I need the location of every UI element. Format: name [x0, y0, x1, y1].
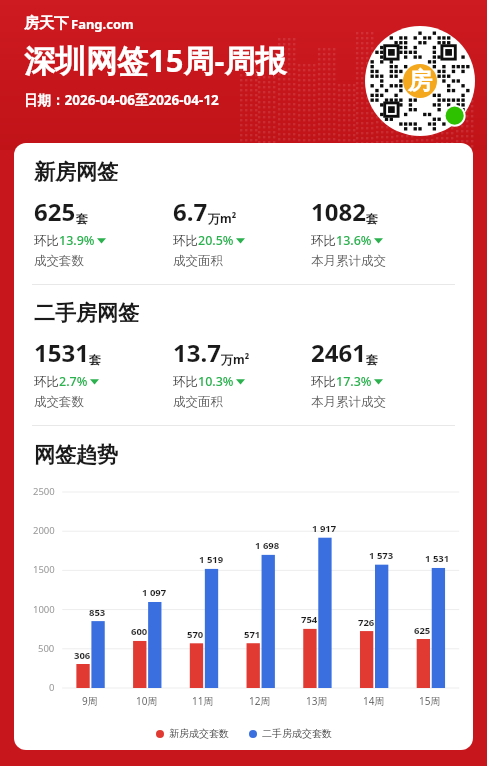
staticText: 1500 — [33, 563, 55, 576]
staticText: 10.3% — [198, 373, 234, 390]
staticText: 万m² — [221, 351, 250, 367]
staticText: 万m² — [208, 210, 237, 226]
staticText: 726 — [358, 616, 375, 629]
staticText: 1 698 — [255, 539, 280, 552]
staticText: 1 917 — [312, 522, 337, 535]
staticText: 本月累计成交 — [311, 253, 386, 269]
staticText: 17.3% — [336, 373, 372, 390]
staticText: 套 — [366, 352, 378, 367]
staticText: 13.9% — [59, 232, 95, 249]
staticText: 1000 — [33, 603, 55, 616]
staticText: 13.6% — [336, 232, 372, 249]
staticText: 11周 — [192, 694, 214, 708]
staticText: 成交套数 — [34, 253, 84, 269]
staticText: 306 — [74, 649, 91, 662]
staticText: 14周 — [363, 694, 385, 708]
staticText: 2.7% — [59, 373, 88, 390]
staticText: 本月累计成交 — [311, 394, 386, 410]
staticText: 环比 — [311, 374, 336, 390]
staticText: 1531 — [34, 336, 89, 369]
button[interactable]: 二手房成交套数 — [249, 727, 332, 740]
button[interactable]: 6.7 — [173, 195, 311, 269]
staticText: 13周 — [306, 694, 328, 708]
staticText: 环比 — [173, 374, 198, 390]
staticText: 成交面积 — [173, 253, 223, 269]
staticText: 20.5% — [198, 232, 234, 249]
button[interactable]: 房天下 — [24, 14, 134, 33]
staticText: 625 — [414, 624, 431, 637]
staticText: 房天下 — [24, 14, 69, 33]
staticText: 新房网签 — [34, 159, 118, 185]
staticText: 套 — [76, 211, 88, 226]
staticText: 0 — [49, 681, 55, 694]
staticText: 房 — [408, 66, 432, 96]
staticText: 853 — [89, 606, 106, 619]
staticText: 二手房网签 — [34, 300, 139, 326]
button[interactable]: 扫码关注房天下公众号 — [365, 26, 475, 136]
button[interactable]: 625 — [34, 195, 173, 269]
staticText: 2000 — [33, 524, 55, 537]
staticText: 日期：2026-04-06至2026-04-12 — [24, 91, 219, 109]
staticText: 500 — [38, 642, 55, 655]
staticText: 1 573 — [369, 549, 394, 562]
staticText: 2500 — [33, 485, 55, 498]
staticText: 10周 — [136, 694, 158, 708]
staticText: 6.7 — [173, 195, 208, 228]
staticText: 环比 — [34, 233, 59, 249]
staticText: 9周 — [82, 694, 98, 708]
staticText: 环比 — [34, 374, 59, 390]
staticText: 1 097 — [142, 586, 167, 599]
button[interactable]: 新房成交套数 — [156, 727, 229, 740]
staticText: 环比 — [173, 233, 198, 249]
button[interactable]: 1531 — [34, 336, 173, 410]
button[interactable]: 2461 — [311, 336, 463, 410]
staticText: 新房成交套数 — [169, 727, 229, 740]
staticText: Fang.com — [71, 15, 134, 33]
staticText: 成交套数 — [34, 394, 84, 410]
staticText: 12周 — [249, 694, 271, 708]
staticText: 754 — [301, 613, 318, 626]
staticText: 1 531 — [425, 552, 450, 565]
button[interactable]: 13.7 — [173, 336, 311, 410]
staticText: 2461 — [311, 336, 366, 369]
staticText: 二手房成交套数 — [262, 727, 332, 740]
staticText: 600 — [131, 625, 148, 638]
staticText: 1 519 — [199, 553, 224, 566]
staticText: 网签趋势 — [34, 442, 118, 468]
button[interactable]: 1082 — [311, 195, 463, 269]
staticText: 13.7 — [173, 336, 221, 369]
staticText: 625 — [34, 195, 76, 228]
staticText: 套 — [366, 211, 378, 226]
staticText: 环比 — [311, 233, 336, 249]
staticText: 571 — [244, 628, 261, 641]
staticText: 深圳网签15周-周报 — [24, 39, 287, 81]
staticText: 15周 — [419, 694, 441, 708]
staticText: 570 — [187, 628, 204, 641]
staticText: 套 — [89, 352, 101, 367]
staticText: 1082 — [311, 195, 366, 228]
staticText: 成交面积 — [173, 394, 223, 410]
